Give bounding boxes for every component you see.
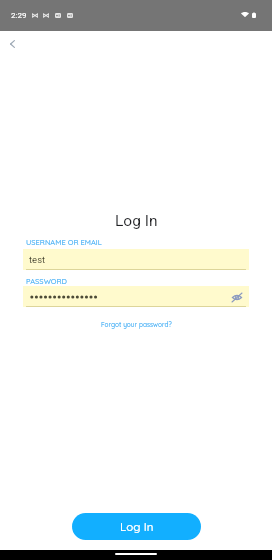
staticText: PASSWORD xyxy=(26,276,67,285)
button[interactable]: test xyxy=(23,249,249,270)
button[interactable]: Back xyxy=(0,32,24,56)
staticText: test xyxy=(29,254,46,265)
button[interactable]: Show password xyxy=(228,288,246,306)
staticText: Log In xyxy=(120,519,154,533)
staticText: USERNAME OR EMAIL xyxy=(26,237,102,246)
button[interactable]: Log In xyxy=(72,513,201,540)
staticText: Log In xyxy=(115,212,158,230)
button[interactable]: Forgot your password? xyxy=(97,318,176,330)
button[interactable]: Show password xyxy=(23,286,249,307)
staticText: 2:29 xyxy=(11,11,27,20)
